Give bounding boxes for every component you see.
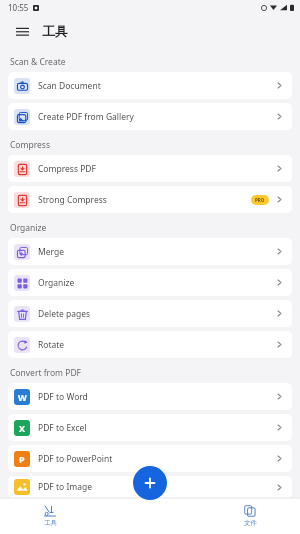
staticText: Rotate — [38, 339, 65, 351]
staticText: Compress PDF — [38, 163, 96, 175]
button[interactable]: W — [8, 383, 292, 410]
staticText: Organize — [38, 277, 75, 289]
button[interactable]: Strong Compress — [8, 186, 292, 213]
staticText: Scan Document — [38, 80, 101, 92]
button[interactable]: P — [8, 445, 292, 472]
button[interactable]: PDF to Image — [8, 476, 292, 498]
button[interactable]: Rotate — [8, 331, 292, 358]
button[interactable]: Create new — [133, 466, 167, 500]
staticText: PRO — [255, 197, 265, 203]
staticText: Scan & Create — [10, 56, 66, 68]
staticText: Strong Compress — [38, 194, 107, 206]
staticText: Merge — [38, 246, 64, 258]
staticText: PDF to Excel — [38, 422, 87, 434]
button[interactable]: Delete pages — [8, 300, 292, 327]
button[interactable]: Menu — [12, 21, 32, 41]
button[interactable]: 工具 — [0, 498, 100, 534]
button[interactable]: 文件 — [200, 498, 300, 534]
staticText: W — [18, 391, 27, 403]
staticText: PDF to Image — [38, 481, 93, 493]
staticText: X — [19, 422, 26, 434]
staticText: Compress — [10, 139, 50, 151]
staticText: Convert from PDF — [10, 367, 81, 379]
button[interactable]: Scan Document — [8, 72, 292, 99]
staticText: PDF to PowerPoint — [38, 453, 113, 465]
staticText: P — [19, 453, 25, 465]
staticText: 文件 — [244, 519, 257, 527]
staticText: Create PDF from Gallery — [38, 111, 134, 123]
button[interactable]: Compress PDF — [8, 155, 292, 182]
staticText: 工具 — [44, 519, 57, 527]
staticText: Delete pages — [38, 308, 91, 320]
staticText: 10:55 — [8, 2, 29, 13]
staticText: PDF to Word — [38, 391, 88, 403]
button[interactable]: X — [8, 414, 292, 441]
staticText: 工具 — [42, 23, 68, 39]
button[interactable]: Create PDF from Gallery — [8, 103, 292, 130]
button[interactable]: Merge — [8, 238, 292, 265]
button[interactable]: Organize — [8, 269, 292, 296]
staticText: Organize — [10, 222, 47, 234]
